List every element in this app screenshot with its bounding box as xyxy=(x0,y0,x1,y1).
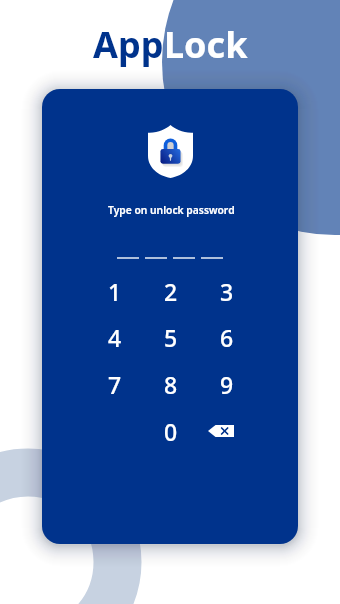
staticText: Lock xyxy=(164,20,248,69)
button[interactable]: 3 xyxy=(202,272,252,310)
button[interactable]: 8 xyxy=(146,365,196,403)
staticText: 6 xyxy=(220,322,234,353)
staticText: 0 xyxy=(164,416,178,447)
button[interactable]: 6 xyxy=(202,318,252,356)
button[interactable]: 2 xyxy=(146,272,196,310)
button[interactable]: 1 xyxy=(90,272,140,310)
button[interactable]: 4 xyxy=(90,318,140,356)
staticText: 7 xyxy=(108,369,122,400)
button[interactable]: 7 xyxy=(90,365,140,403)
button[interactable]: 0 xyxy=(146,412,196,450)
staticText: 9 xyxy=(220,369,234,400)
button[interactable]: 5 xyxy=(146,318,196,356)
staticText: App xyxy=(93,20,164,69)
staticText: 4 xyxy=(108,322,122,353)
staticText: 1 xyxy=(108,276,122,307)
button[interactable]: 9 xyxy=(202,365,252,403)
staticText: 8 xyxy=(164,369,178,400)
staticText: 3 xyxy=(220,276,234,307)
button[interactable]: Backspace xyxy=(196,412,246,450)
staticText: 2 xyxy=(164,276,178,307)
staticText: Type on unlock password xyxy=(108,203,235,217)
staticText: 5 xyxy=(164,322,178,353)
